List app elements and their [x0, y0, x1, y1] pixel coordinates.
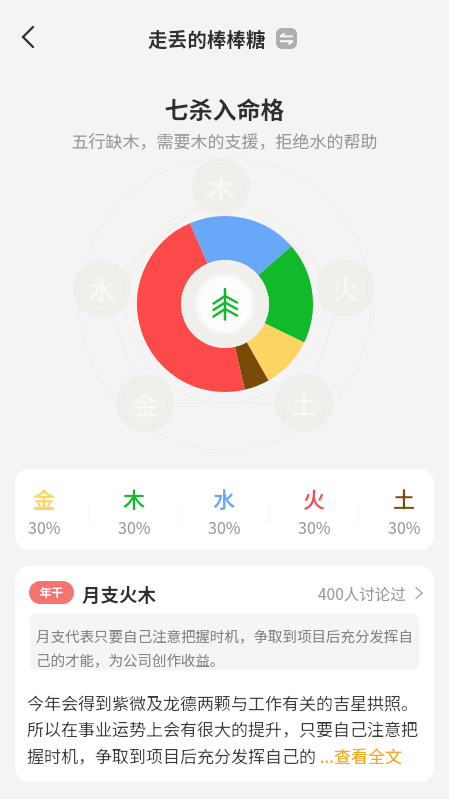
staticText: 火 — [333, 269, 360, 307]
staticText: 七杀入命格 — [0, 91, 449, 126]
button[interactable]: Switch chart — [276, 28, 297, 49]
button[interactable]: 金 — [0, 469, 89, 550]
staticText: 月支代表只要自己注意把握时机，争取到项目后充分发挥自己的才能，为公司创作收益。 — [36, 625, 418, 670]
staticText: 五行缺木，需要木的支援，拒绝水的帮助 — [0, 128, 449, 153]
staticText: 木 — [208, 168, 235, 206]
button[interactable]: Back — [12, 21, 44, 53]
staticText: 30% — [28, 515, 61, 538]
button[interactable]: 木 — [89, 469, 179, 550]
staticText: 30% — [298, 515, 331, 538]
staticText: 月支火木 — [82, 581, 157, 604]
staticText: 金 — [132, 385, 159, 423]
button[interactable]: 水 — [179, 469, 269, 550]
staticText: 土 — [393, 482, 416, 514]
staticText: 30% — [118, 515, 151, 538]
button[interactable]: 火 — [269, 469, 359, 550]
staticText: 30% — [208, 515, 241, 538]
staticText: 金 — [33, 482, 56, 514]
staticText: 30% — [388, 515, 421, 538]
button[interactable]: 土 — [359, 469, 449, 550]
staticText: 400人讨论过 — [318, 582, 406, 604]
button[interactable]: 400人讨论过 — [318, 582, 426, 604]
staticText: 年干 — [40, 584, 63, 601]
staticText: 水 — [89, 270, 116, 308]
staticText: 走丢的棒棒糖 — [148, 24, 266, 52]
staticText: 水 — [213, 482, 236, 514]
staticText: 土 — [291, 384, 318, 422]
staticText: 木 — [123, 482, 146, 514]
staticText: 今年会得到紫微及龙德两颗与工作有关的吉星拱照。所以在事业运势上会有很大的提升，只… — [27, 690, 422, 768]
button[interactable]: 年干 — [29, 581, 74, 604]
staticText: 火 — [303, 482, 326, 514]
